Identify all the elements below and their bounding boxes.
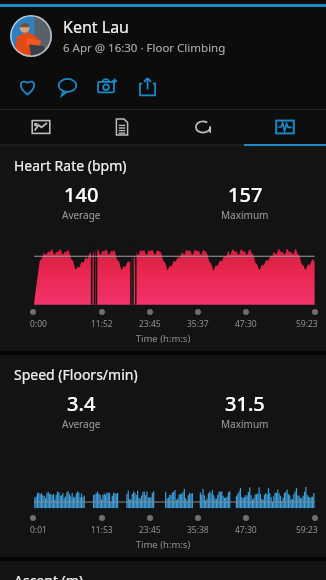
staticText: Average xyxy=(62,208,101,222)
staticText: Time (h:m:s) xyxy=(0,332,326,345)
button[interactable]: Profile photo xyxy=(10,15,52,57)
staticText: 11:52 xyxy=(91,318,113,330)
staticText: 35:38 xyxy=(187,524,209,536)
staticText: Maximum xyxy=(221,417,269,431)
button[interactable]: Map xyxy=(0,110,81,144)
staticText: 11:53 xyxy=(91,524,113,536)
staticText: Average xyxy=(62,417,101,431)
staticText: Heart Rate (bpm) xyxy=(14,156,127,175)
button[interactable]: Comment xyxy=(52,71,82,101)
staticText: 140 xyxy=(64,181,99,208)
staticText: 59:23 xyxy=(296,318,318,330)
staticText: Time (h:m:s) xyxy=(0,538,326,551)
staticText: 47:30 xyxy=(235,524,257,536)
staticText: 23:45 xyxy=(139,524,161,536)
button[interactable]: Details xyxy=(81,110,162,144)
button[interactable]: Speed (Floors/min) xyxy=(0,355,326,557)
button[interactable]: Charts xyxy=(244,110,326,144)
staticText: 31.5 xyxy=(225,390,265,417)
staticText: 0:01 xyxy=(30,524,47,536)
staticText: Speed (Floors/min) xyxy=(14,365,138,384)
staticText: 23:45 xyxy=(139,318,161,330)
staticText: 59:23 xyxy=(296,524,318,536)
staticText: Ascent (m) xyxy=(14,571,84,580)
button[interactable]: Share xyxy=(132,71,162,101)
button[interactable]: Add photo xyxy=(92,71,122,101)
staticText: 6 Apr @ 16:30 · Floor Climbing xyxy=(63,40,226,56)
staticText: Maximum xyxy=(221,208,269,222)
staticText: 0:00 xyxy=(30,318,47,330)
staticText: Kent Lau xyxy=(63,16,130,38)
button[interactable]: Ascent (m) xyxy=(0,561,326,580)
staticText: 3.4 xyxy=(67,390,96,417)
button[interactable]: Like xyxy=(12,71,42,101)
staticText: 35:37 xyxy=(187,318,209,330)
button[interactable]: Laps xyxy=(162,110,244,144)
staticText: 157 xyxy=(228,181,263,208)
staticText: 47:30 xyxy=(235,318,257,330)
button[interactable]: Heart Rate (bpm) xyxy=(0,146,326,351)
button[interactable]: Profile photo xyxy=(0,7,326,65)
